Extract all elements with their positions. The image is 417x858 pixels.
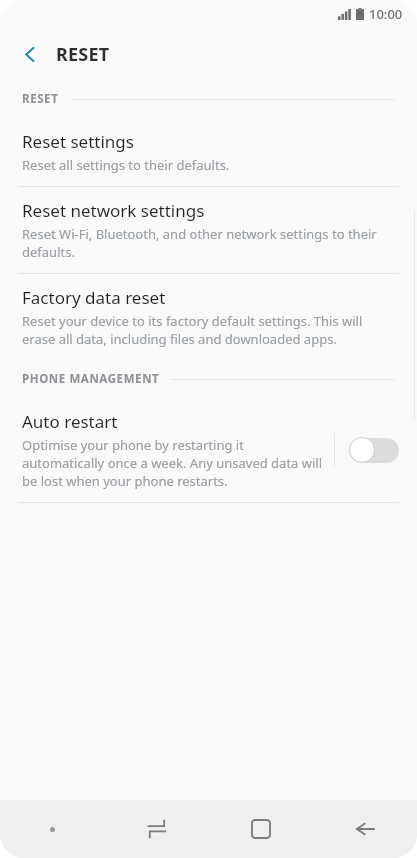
- button[interactable]: Back: [12, 36, 48, 72]
- button[interactable]: Home: [209, 800, 313, 858]
- button[interactable]: Auto restart: [0, 398, 417, 503]
- staticText: Reset all settings to their defaults.: [22, 156, 230, 174]
- button[interactable]: Reset network settings: [0, 187, 417, 274]
- button[interactable]: Back: [313, 800, 417, 858]
- staticText: Reset your device to its factory default…: [22, 312, 393, 348]
- staticText: Optimise your phone by restarting it aut…: [22, 436, 324, 490]
- staticText: Auto restart: [22, 410, 118, 433]
- staticText: Reset settings: [22, 130, 134, 153]
- staticText: Reset Wi-Fi, Bluetooth, and other networ…: [22, 225, 393, 261]
- staticText: RESET: [56, 42, 110, 67]
- button[interactable]: Factory data reset: [0, 274, 417, 360]
- staticText: PHONE MANAGEMENT: [22, 371, 160, 387]
- staticText: Factory data reset: [22, 286, 166, 309]
- button[interactable]: Reset settings: [0, 118, 417, 187]
- staticText: Reset network settings: [22, 199, 205, 222]
- button[interactable]: Auto restart toggle: [349, 433, 401, 467]
- button[interactable]: Recents: [105, 800, 209, 858]
- staticText: RESET: [22, 91, 59, 107]
- staticText: 10:00: [369, 5, 403, 23]
